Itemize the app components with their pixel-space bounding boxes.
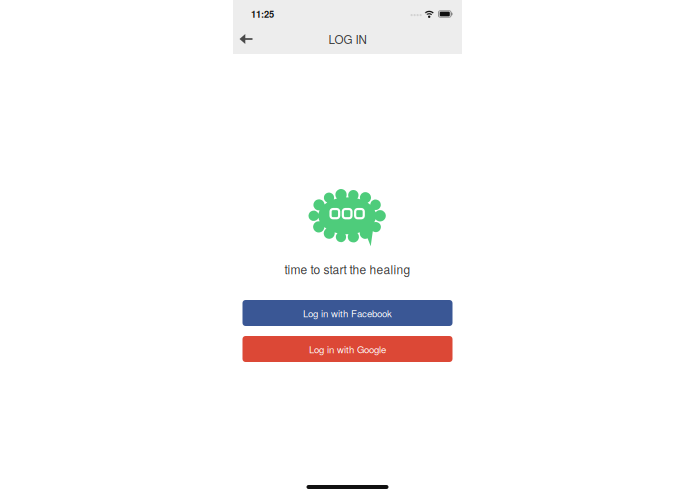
button[interactable]: Back [233, 23, 259, 55]
staticText: Log in with Google [309, 342, 386, 356]
staticText: Log in with Facebook [303, 306, 392, 320]
staticText: time to start the healing [284, 260, 410, 278]
button[interactable]: Log in with Facebook [242, 300, 452, 326]
staticText: LOG IN [328, 31, 366, 47]
button[interactable]: Log in with Google [242, 336, 452, 362]
staticText: 11:25 [251, 7, 274, 21]
